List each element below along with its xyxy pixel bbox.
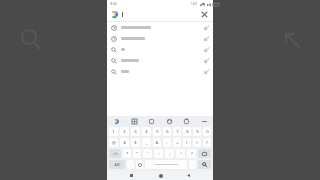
button[interactable]: Insert suggestion <box>107 33 213 44</box>
button[interactable]: # <box>120 138 129 147</box>
button[interactable]: 0 <box>203 127 211 136</box>
button[interactable]: " <box>133 149 141 158</box>
staticText: $ <box>134 140 137 146</box>
button[interactable]: ABC <box>109 160 125 169</box>
button[interactable]: 2 <box>120 127 129 136</box>
staticText: 3 <box>134 129 137 135</box>
button[interactable]: Themes <box>130 117 138 125</box>
button[interactable]: Space <box>145 160 187 169</box>
staticText: 5 <box>156 129 159 135</box>
button[interactable]: - <box>163 138 171 147</box>
button[interactable]: 7 <box>173 127 181 136</box>
button[interactable]: GIF <box>147 117 155 125</box>
staticText: * <box>126 151 129 157</box>
button[interactable]: More options <box>200 117 208 125</box>
staticText: _ <box>146 140 148 146</box>
staticText: 9:54 <box>110 2 117 6</box>
button[interactable]: & <box>153 138 161 147</box>
button[interactable]: =\< <box>109 149 121 158</box>
staticText: ' <box>147 151 148 157</box>
button[interactable]: 5 <box>153 127 161 136</box>
staticText: ( <box>186 140 188 146</box>
button[interactable]: , <box>127 160 134 169</box>
button[interactable]: Search <box>198 160 211 169</box>
button[interactable]: / <box>203 138 211 147</box>
button[interactable]: * <box>123 149 131 158</box>
staticText: 1 <box>112 129 115 135</box>
staticText: 4 <box>145 129 148 135</box>
button[interactable]: Stickers <box>165 117 173 125</box>
staticText: 0 <box>206 129 209 135</box>
button[interactable]: Back <box>184 171 193 180</box>
other: Insert suggestion <box>204 58 209 63</box>
button[interactable]: _ <box>142 138 151 147</box>
staticText: ! <box>180 151 182 157</box>
staticText: 2 <box>123 129 126 135</box>
button[interactable]: Insert suggestion <box>107 22 213 33</box>
button[interactable]: . <box>189 160 196 169</box>
button[interactable]: ; <box>165 149 174 158</box>
button[interactable]: Clear search <box>107 8 213 21</box>
button[interactable]: Insert suggestion <box>107 44 213 55</box>
button[interactable]: 4 <box>142 127 151 136</box>
button[interactable]: ) <box>193 138 201 147</box>
button[interactable]: 1 <box>109 127 118 136</box>
staticText: . <box>192 162 194 168</box>
staticText: & <box>155 140 159 146</box>
other: Insert suggestion <box>204 25 209 30</box>
staticText: - <box>166 140 168 146</box>
staticText: 6 <box>166 129 169 135</box>
staticText: ; <box>169 151 171 157</box>
staticText: =\< <box>113 152 118 156</box>
button[interactable]: 9 <box>193 127 201 136</box>
button[interactable]: 6 <box>163 127 171 136</box>
other: Insert suggestion <box>204 36 209 41</box>
button[interactable]: ' <box>143 149 152 158</box>
button[interactable]: ( <box>183 138 191 147</box>
button[interactable]: Clear search <box>200 10 209 19</box>
staticText: 14% <box>191 2 197 6</box>
staticText: ) <box>196 140 198 146</box>
button[interactable]: Home <box>156 171 165 180</box>
button[interactable]: : <box>154 149 163 158</box>
button[interactable]: Clipboard <box>182 117 190 125</box>
staticText: + <box>176 140 179 146</box>
staticText: 8 <box>186 129 189 135</box>
button[interactable]: ? <box>187 149 196 158</box>
staticText: , <box>130 162 132 168</box>
other: Insert suggestion <box>204 47 209 52</box>
button[interactable]: Emoji <box>136 160 143 169</box>
button[interactable]: Google <box>112 117 120 125</box>
button[interactable]: Recents <box>127 171 136 180</box>
staticText: # <box>123 140 126 146</box>
staticText: " <box>136 151 138 157</box>
staticText: / <box>206 140 208 146</box>
staticText: : <box>158 151 160 157</box>
button[interactable]: + <box>173 138 181 147</box>
button[interactable]: ! <box>176 149 185 158</box>
other: Insert suggestion <box>204 69 209 74</box>
button[interactable]: Insert suggestion <box>107 55 213 66</box>
button[interactable]: 3 <box>131 127 140 136</box>
button[interactable]: @ <box>109 138 118 147</box>
staticText: ABC <box>114 163 121 167</box>
button[interactable]: 8 <box>183 127 191 136</box>
staticText: ? <box>191 151 193 157</box>
button[interactable]: Insert suggestion <box>107 66 213 77</box>
staticText: 9 <box>196 129 199 135</box>
staticText: @ <box>112 140 116 146</box>
staticText: 7 <box>176 129 179 135</box>
button[interactable]: Backspace <box>198 149 211 158</box>
button[interactable]: $ <box>131 138 140 147</box>
